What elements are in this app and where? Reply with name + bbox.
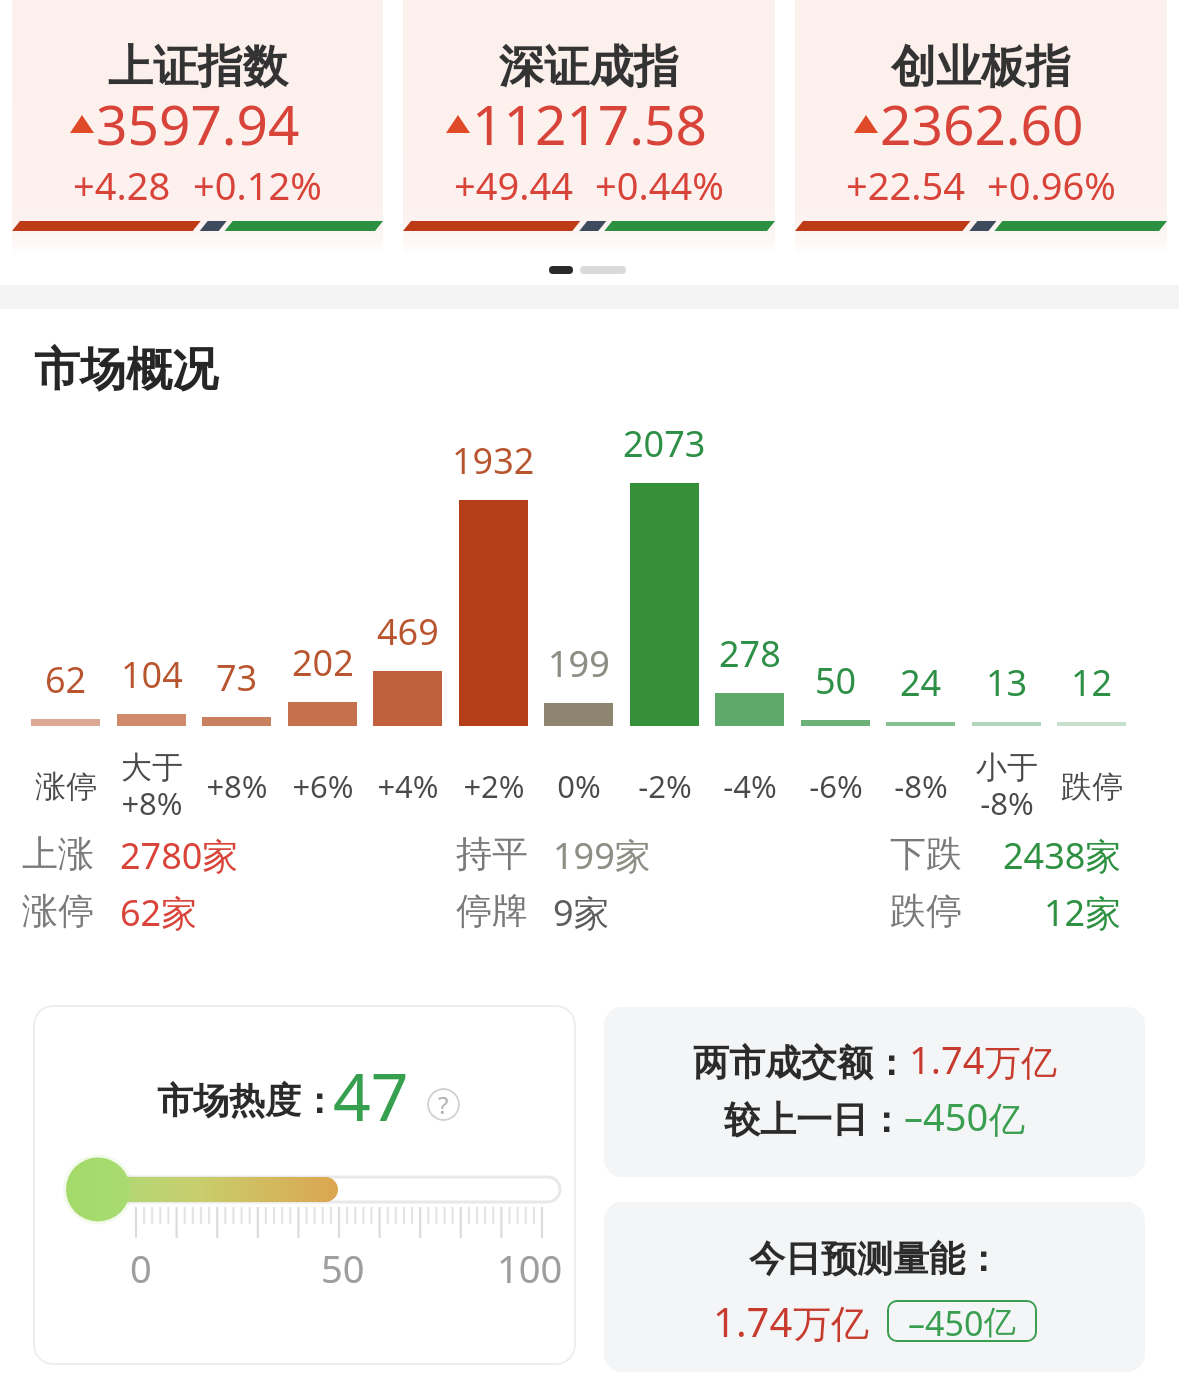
staticText: +8% bbox=[206, 765, 268, 807]
staticText: +0.96% bbox=[987, 159, 1116, 211]
staticText: 较上一日： bbox=[724, 1097, 904, 1142]
staticText: –450 bbox=[904, 1090, 989, 1142]
staticText: ? bbox=[438, 1088, 449, 1121]
button[interactable]: 上证指数 bbox=[12, 0, 383, 255]
staticText: 两市成交额： bbox=[693, 1040, 909, 1085]
staticText: 202 bbox=[292, 638, 354, 687]
staticText: 上证指数 bbox=[108, 39, 288, 96]
button[interactable]: 说明 bbox=[427, 1088, 460, 1121]
staticText: -2% bbox=[638, 765, 692, 807]
staticText: 涨停 bbox=[22, 888, 94, 933]
staticText: 0% bbox=[557, 765, 601, 807]
button[interactable]: 市场热度： bbox=[33, 1005, 576, 1365]
staticText: 1932 bbox=[452, 436, 535, 485]
staticText: 100 bbox=[497, 1242, 563, 1294]
staticText: 2362.60 bbox=[880, 86, 1084, 161]
button[interactable]: 深证成指 bbox=[403, 0, 775, 255]
staticText: 62 bbox=[45, 655, 87, 704]
staticText: +22.54 bbox=[846, 159, 965, 211]
staticText: 2073 bbox=[623, 419, 706, 468]
staticText: 24 bbox=[900, 658, 942, 707]
staticText: 1.74 bbox=[909, 1033, 985, 1085]
button[interactable]: 创业板指 bbox=[795, 0, 1167, 255]
button[interactable]: 今日预测量能： bbox=[604, 1202, 1145, 1372]
staticText: -6% bbox=[809, 765, 863, 807]
staticText: 深证成指 bbox=[499, 39, 679, 96]
staticText: 2780家 bbox=[120, 831, 239, 880]
staticText: 万亿 bbox=[793, 1300, 869, 1348]
staticText: 小于 -8% bbox=[976, 748, 1038, 824]
staticText: 亿 bbox=[989, 1097, 1025, 1142]
staticText: 11217.58 bbox=[472, 86, 707, 161]
staticText: 下跌 bbox=[890, 831, 962, 876]
staticText: +2% bbox=[463, 765, 525, 807]
staticText: 市场概况 bbox=[34, 341, 218, 399]
staticText: 50 bbox=[815, 656, 857, 705]
staticText: 0 bbox=[130, 1242, 152, 1294]
staticText: +6% bbox=[292, 765, 354, 807]
staticText: 跌停 bbox=[1061, 767, 1123, 806]
staticText: 涨停 bbox=[35, 767, 97, 806]
staticText: 跌停 bbox=[890, 888, 962, 933]
staticText: 47 bbox=[333, 1050, 409, 1140]
staticText: 2438家 bbox=[1003, 831, 1122, 880]
staticText: 12 bbox=[1071, 658, 1113, 707]
staticText: 13 bbox=[986, 658, 1028, 707]
staticText: 创业板指 bbox=[891, 39, 1071, 96]
staticText: –450 bbox=[908, 1300, 984, 1342]
staticText: 大于 +8% bbox=[121, 748, 183, 824]
staticText: 持平 bbox=[456, 831, 528, 876]
staticText: 73 bbox=[216, 653, 258, 702]
staticText: 万亿 bbox=[985, 1040, 1057, 1085]
staticText: -8% bbox=[894, 765, 948, 807]
staticText: 12家 bbox=[1044, 888, 1122, 937]
staticText: -4% bbox=[723, 765, 777, 807]
staticText: 市场热度： bbox=[157, 1078, 337, 1123]
staticText: +0.12% bbox=[193, 159, 322, 211]
staticText: 104 bbox=[121, 650, 183, 699]
staticText: +4.28 bbox=[73, 159, 171, 211]
staticText: 50 bbox=[321, 1242, 365, 1294]
staticText: 278 bbox=[719, 629, 781, 678]
staticText: 199家 bbox=[553, 831, 651, 880]
staticText: 9家 bbox=[553, 888, 610, 937]
staticText: 今日预测量能： bbox=[749, 1236, 1001, 1281]
staticText: 469 bbox=[377, 607, 439, 656]
staticText: +4% bbox=[377, 765, 439, 807]
staticText: 停牌 bbox=[456, 888, 528, 933]
staticText: +0.44% bbox=[595, 159, 724, 211]
staticText: 1.74 bbox=[713, 1294, 793, 1348]
staticText: 亿 bbox=[984, 1302, 1016, 1342]
staticText: 62家 bbox=[120, 888, 198, 937]
button[interactable]: 两市成交额： bbox=[604, 1007, 1145, 1177]
staticText: 199 bbox=[548, 639, 610, 688]
staticText: 3597.94 bbox=[96, 86, 300, 161]
staticText: 上涨 bbox=[22, 831, 94, 876]
staticText: +49.44 bbox=[454, 159, 573, 211]
